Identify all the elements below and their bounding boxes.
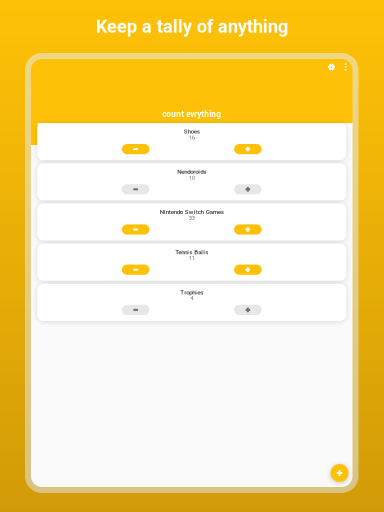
staticText: 4 <box>190 295 193 302</box>
staticText: Nintendo Switch Games <box>160 208 224 215</box>
staticText: 16 <box>189 134 195 141</box>
staticText: 33 <box>189 214 195 221</box>
button[interactable]: Increase Shoes <box>234 144 262 154</box>
button[interactable]: Decrease Shoes <box>122 144 149 154</box>
staticText: Trophies <box>180 289 203 296</box>
staticText: Shoes <box>184 128 200 135</box>
button[interactable]: Increase Tennis Balls <box>234 265 262 275</box>
button[interactable]: Settings <box>324 60 339 74</box>
button[interactable]: Add a new counter <box>330 464 348 482</box>
staticText: 11 <box>189 255 195 262</box>
staticText: Keep a tally of anything <box>96 16 288 37</box>
button[interactable]: Increase Nintendo Switch Games <box>234 224 262 235</box>
button[interactable]: More options <box>339 60 352 74</box>
staticText: Tennis Balls <box>175 248 208 256</box>
button[interactable]: Decrease Tennis Balls <box>122 265 149 275</box>
staticText: Nendoroids <box>177 168 206 175</box>
button[interactable]: Decrease Nendoroids <box>122 184 149 194</box>
staticText: 10 <box>189 174 195 181</box>
button[interactable]: Increase Nendoroids <box>234 184 262 194</box>
button[interactable]: Decrease Trophies <box>122 305 149 315</box>
button[interactable]: Decrease Nintendo Switch Games <box>122 224 149 235</box>
button[interactable]: Increase Trophies <box>234 305 262 315</box>
staticText: count evrything <box>162 109 221 119</box>
